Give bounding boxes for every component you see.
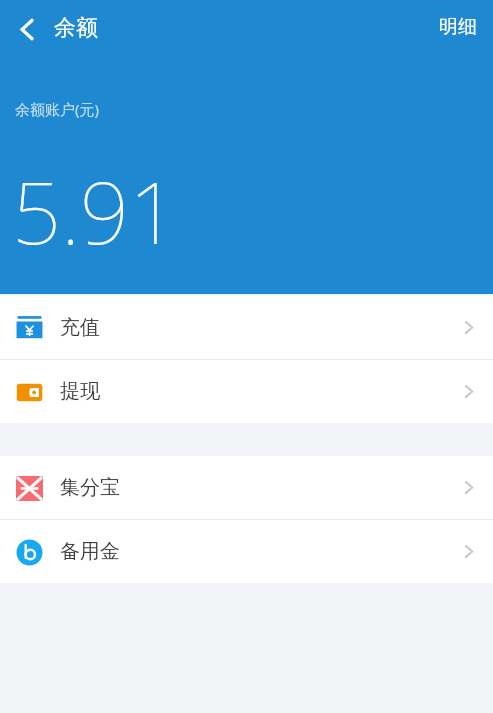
button[interactable]: 充值 <box>0 296 493 359</box>
staticText: 余额账户(元) <box>15 99 100 119</box>
button[interactable]: 提现 <box>0 360 493 423</box>
staticText: 余额 <box>54 14 98 42</box>
button[interactable]: 明细 <box>429 6 487 48</box>
staticText: 5.91 <box>12 152 178 269</box>
button[interactable]: 集分宝 <box>0 456 493 519</box>
staticText: 明细 <box>439 15 477 39</box>
staticText: 备用金 <box>60 539 120 564</box>
staticText: 充值 <box>60 315 100 340</box>
staticText: 集分宝 <box>60 475 120 500</box>
button[interactable]: 备用金 <box>0 520 493 583</box>
staticText: 提现 <box>60 379 100 404</box>
button[interactable]: Back <box>4 6 50 52</box>
